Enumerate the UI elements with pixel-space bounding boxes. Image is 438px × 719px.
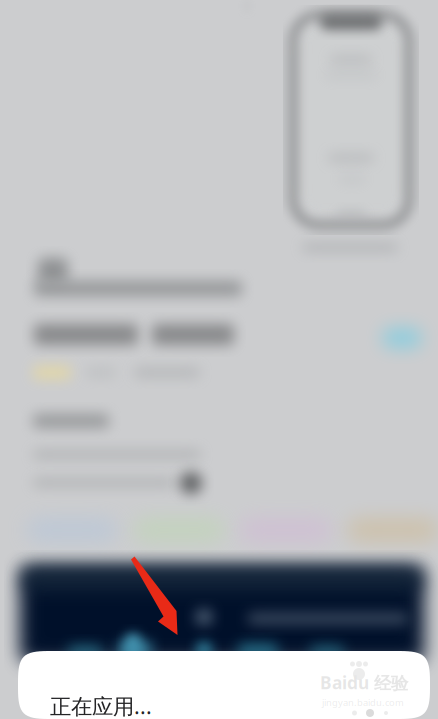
staticText: Baidu 经验 — [320, 671, 408, 694]
staticText: jingyan.baidu.com — [322, 696, 404, 708]
staticText: 正在应用... — [50, 692, 152, 719]
button[interactable]: Baidu 经验 — [18, 651, 430, 719]
